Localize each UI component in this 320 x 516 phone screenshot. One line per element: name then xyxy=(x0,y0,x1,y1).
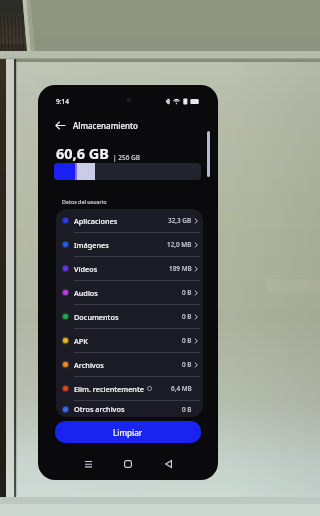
staticText: 0 B xyxy=(182,288,192,297)
staticText: Aplicaciones xyxy=(74,216,118,226)
other: Back xyxy=(54,119,67,132)
button[interactable]: Aplicaciones xyxy=(56,209,203,232)
button[interactable]: Elim. recientemente xyxy=(56,377,203,400)
button[interactable]: Audios xyxy=(56,281,203,304)
staticText: 60,6 GB xyxy=(56,143,109,163)
staticText: Vídeos xyxy=(74,264,98,274)
staticText: Otros archivos xyxy=(74,404,125,414)
button[interactable]: Vídeos xyxy=(56,257,203,280)
staticText: 6,4 MB xyxy=(171,384,192,393)
staticText: Datos del usuario xyxy=(62,198,107,205)
staticText: 0 B xyxy=(182,360,192,369)
staticText: Limpiar xyxy=(113,427,143,438)
button[interactable]: Otros archivos xyxy=(56,401,203,417)
button[interactable]: Archivos xyxy=(56,353,203,376)
button[interactable]: Home xyxy=(118,454,138,474)
staticText: 0 B xyxy=(182,312,192,321)
staticText: 189 MB xyxy=(169,264,192,273)
staticText: 32,3 GB xyxy=(168,216,192,225)
staticText: Documentos xyxy=(74,312,119,322)
staticText: Almacenamiento xyxy=(73,120,138,131)
staticText: 0 B xyxy=(182,405,192,414)
button[interactable]: Limpiar xyxy=(55,421,201,443)
button[interactable]: Documentos xyxy=(56,305,203,328)
button[interactable]: Back xyxy=(158,454,178,474)
button[interactable]: Recent apps xyxy=(78,454,98,474)
staticText: 12,0 MB xyxy=(167,240,192,249)
staticText: APK xyxy=(74,336,88,346)
button[interactable]: APK xyxy=(56,329,203,352)
staticText: | 256 GB xyxy=(113,153,141,162)
staticText: Audios xyxy=(74,288,98,298)
staticText: Imágenes xyxy=(74,240,109,250)
staticText: Elim. recientemente xyxy=(74,384,144,394)
staticText: Archivos xyxy=(74,360,104,370)
button[interactable]: Imágenes xyxy=(56,233,203,256)
staticText: 0 B xyxy=(182,336,192,345)
button[interactable]: Back xyxy=(54,115,138,135)
staticText: 9:14 xyxy=(56,97,69,106)
